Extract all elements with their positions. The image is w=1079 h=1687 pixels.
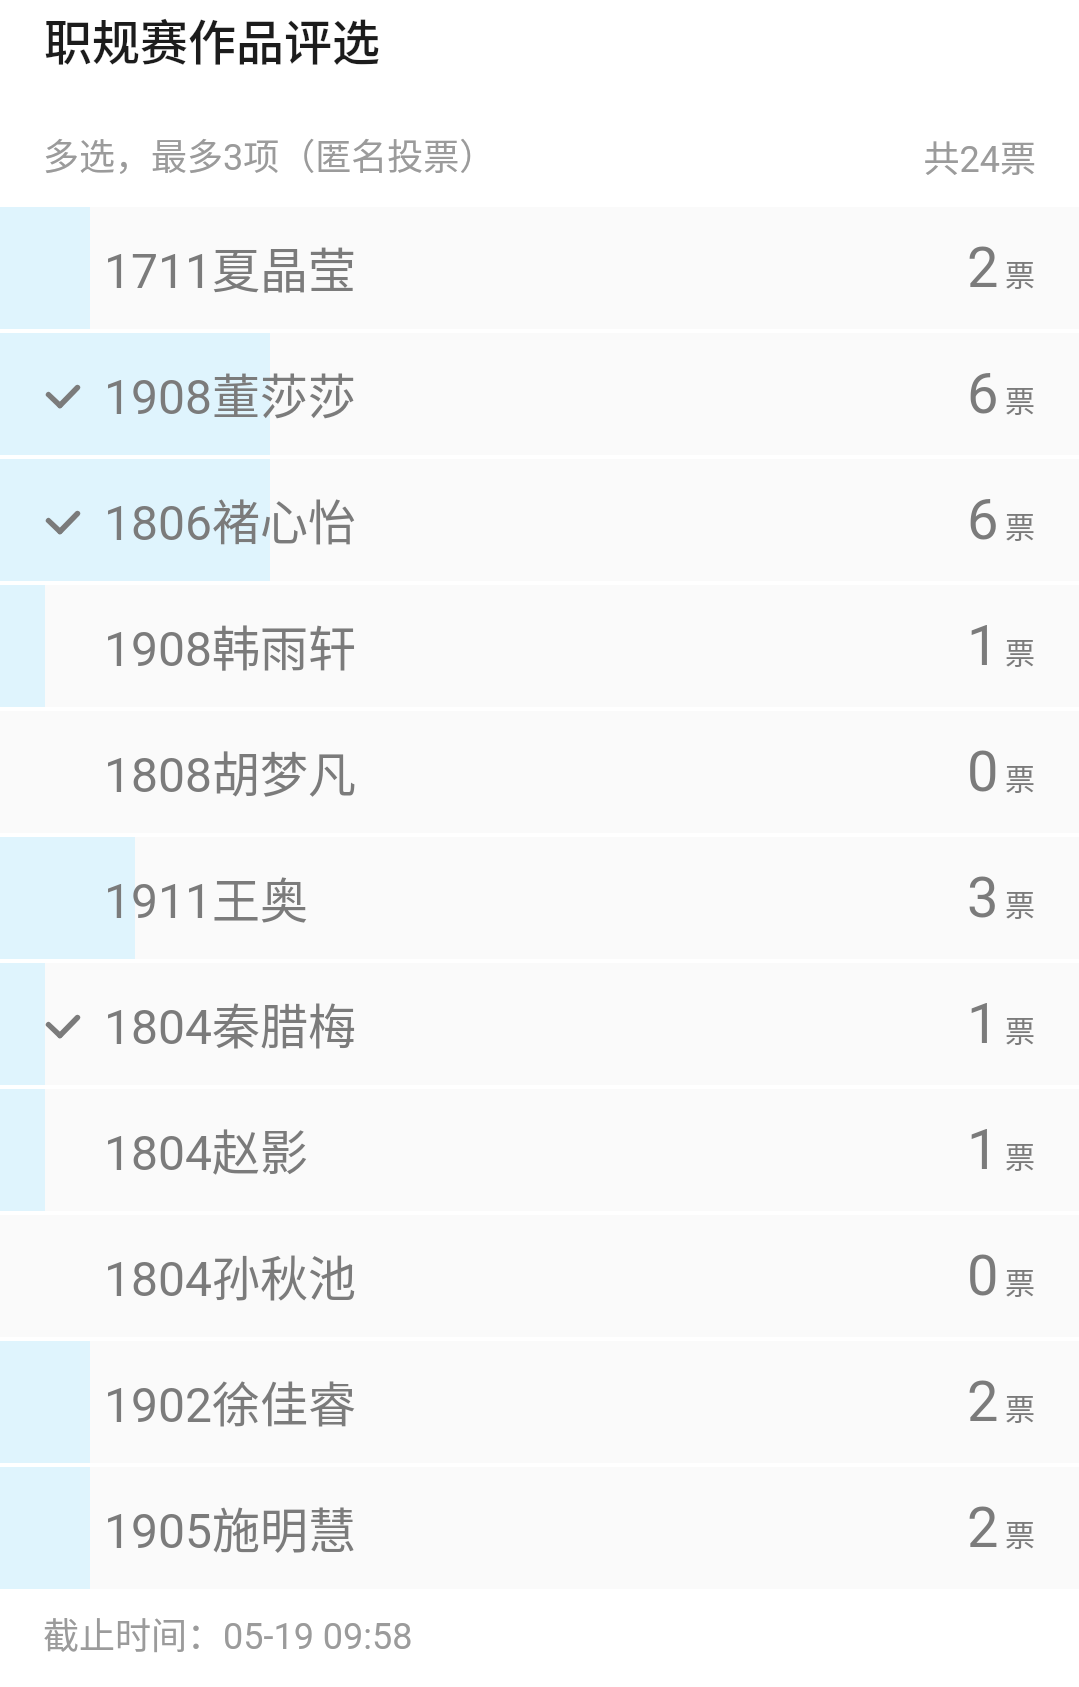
staticText: 2 — [967, 1495, 999, 1561]
staticText: 2 — [967, 235, 999, 301]
staticText: 职规赛作品评选 — [44, 4, 381, 74]
staticText: 1905施明慧 — [104, 1492, 356, 1562]
button[interactable]: 1905施明慧 — [0, 1467, 1079, 1589]
staticText: 1911王奥 — [104, 862, 308, 932]
staticText: 3 — [967, 865, 999, 931]
staticText: 0 — [967, 1243, 999, 1309]
button[interactable]: 1908韩雨轩 — [0, 585, 1079, 707]
staticText: 票 — [1005, 1259, 1035, 1302]
staticText: 1804孙秋池 — [104, 1240, 356, 1310]
staticText: 2 — [967, 1369, 999, 1435]
staticText: 6 — [967, 487, 999, 553]
button[interactable]: 1902徐佳睿 — [0, 1341, 1079, 1463]
button[interactable]: 1711夏晶莹 — [0, 207, 1079, 329]
staticText: 6 — [967, 361, 999, 427]
staticText: 截止时间：05-19 09:58 — [43, 1607, 413, 1659]
staticText: 1 — [967, 1117, 999, 1183]
staticText: 1808胡梦凡 — [104, 736, 356, 806]
staticText: 1 — [967, 613, 999, 679]
staticText: 票 — [1005, 503, 1035, 546]
staticText: 票 — [1005, 629, 1035, 672]
button[interactable]: 1804孙秋池 — [0, 1215, 1079, 1337]
staticText: 票 — [1005, 1133, 1035, 1176]
staticText: 票 — [1005, 377, 1035, 420]
button[interactable]: 1804赵影 — [0, 1089, 1079, 1211]
staticText: 1804秦腊梅 — [104, 988, 356, 1058]
staticText: 票 — [1005, 881, 1035, 924]
staticText: 多选，最多3项（匿名投票） — [43, 128, 496, 180]
other: Selected option — [46, 511, 80, 534]
button[interactable]: Selected option — [0, 333, 1079, 455]
staticText: 1902徐佳睿 — [104, 1366, 356, 1436]
staticText: 票 — [1005, 755, 1035, 798]
button[interactable]: 1808胡梦凡 — [0, 711, 1079, 833]
button[interactable]: Selected option — [0, 459, 1079, 581]
staticText: 1804赵影 — [104, 1114, 308, 1184]
other: Selected option — [46, 1015, 80, 1038]
staticText: 1 — [967, 991, 999, 1057]
staticText: 1711夏晶莹 — [104, 232, 356, 302]
staticText: 票 — [1005, 1385, 1035, 1428]
other: Selected option — [46, 385, 80, 408]
staticText: 票 — [1005, 1007, 1035, 1050]
staticText: 共24票 — [0, 130, 1036, 182]
staticText: 1806褚心怡 — [104, 484, 356, 554]
button[interactable]: 1911王奥 — [0, 837, 1079, 959]
staticText: 票 — [1005, 251, 1035, 294]
staticText: 1908韩雨轩 — [104, 610, 356, 680]
staticText: 1908董莎莎 — [104, 358, 356, 428]
staticText: 0 — [967, 739, 999, 805]
button[interactable]: Selected option — [0, 963, 1079, 1085]
staticText: 票 — [1005, 1511, 1035, 1554]
